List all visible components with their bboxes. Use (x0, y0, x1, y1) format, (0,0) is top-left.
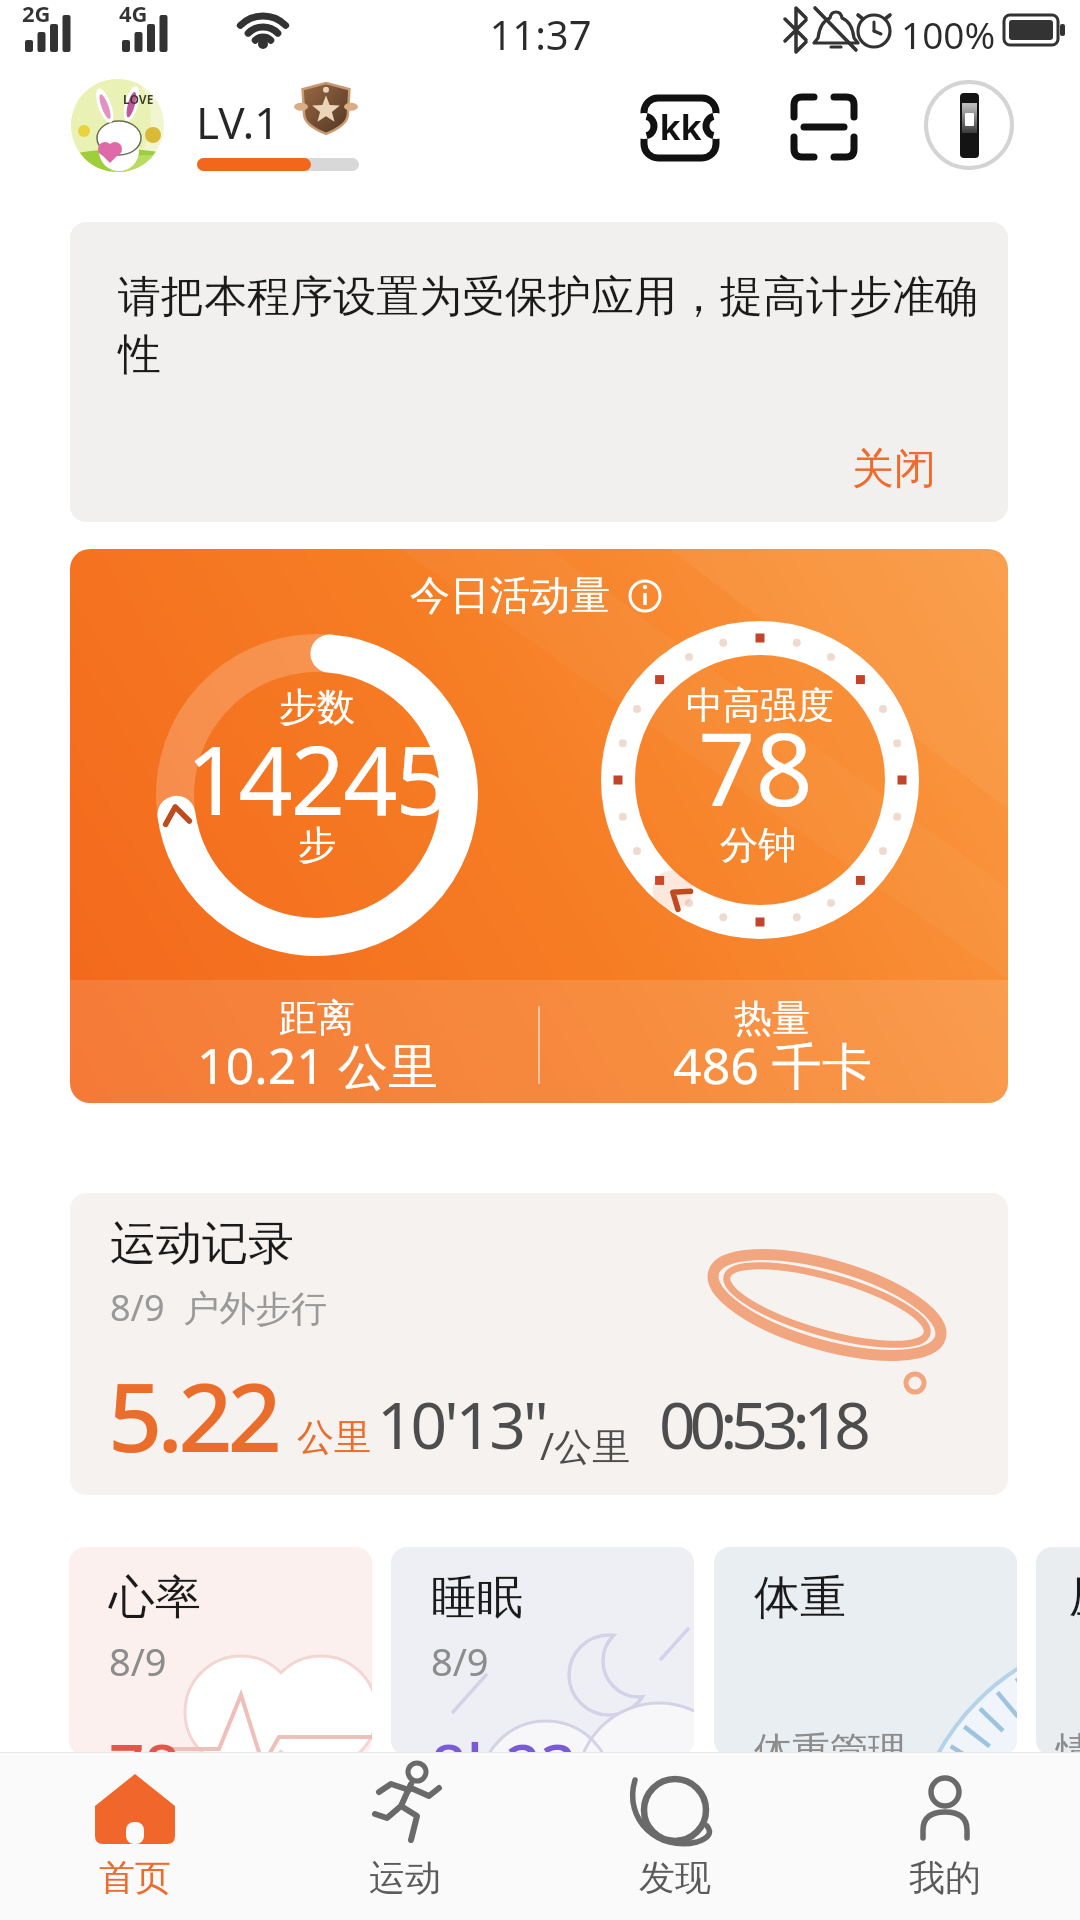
button[interactable] (925, 81, 1013, 169)
staticText: 运动记录 (110, 1215, 294, 1273)
staticText: 请把本程序设置为受保护应用，提高计步准确 性 (118, 270, 978, 381)
button[interactable]: 今日活动量 (70, 549, 1008, 1103)
staticText: 心率 (109, 1569, 201, 1627)
staticText: LV.1 (196, 92, 280, 152)
staticText: 中高强度 (686, 682, 834, 729)
staticText: 关闭 (852, 443, 936, 496)
staticText: 8h23 (431, 1723, 577, 1756)
staticText: 公里 (297, 1414, 371, 1461)
staticText: 今日活动量 (410, 570, 610, 620)
staticText: 14245 (186, 713, 448, 842)
button[interactable]: 运动 (270, 1752, 540, 1920)
staticText: 热量 (734, 994, 810, 1042)
button[interactable] (790, 93, 858, 161)
staticText: 首页 (99, 1855, 171, 1900)
staticText: 运动 (369, 1855, 441, 1900)
staticText: 体重 (754, 1569, 846, 1627)
staticText: 10.21 公里 (197, 1031, 438, 1099)
staticText: 486 千卡 (673, 1031, 872, 1099)
button[interactable]: 关闭 (852, 443, 936, 496)
staticText: 11:37 (489, 7, 592, 61)
staticText: 体重管理 (754, 1727, 906, 1756)
button[interactable]: 心率 (69, 1547, 372, 1756)
button[interactable]: 请把本程序设置为受保护应用，提高计步准确 性 (70, 222, 1008, 522)
staticText: 10'13" (377, 1381, 546, 1468)
staticText: 情绪管理 (1056, 1727, 1080, 1756)
button[interactable]: 睡眠 (391, 1547, 694, 1756)
staticText: 睡眠 (431, 1569, 523, 1627)
staticText: LOVE (123, 91, 154, 107)
staticText: 100% (901, 9, 996, 59)
button[interactable]: 首页 (0, 1752, 270, 1920)
staticText: /公里 (540, 1419, 631, 1471)
button[interactable]: kk (640, 94, 720, 162)
button[interactable]: 体重 (714, 1547, 1017, 1756)
staticText: 78 (698, 699, 813, 835)
staticText: 压力 (1069, 1569, 1080, 1627)
staticText: 我的 (909, 1855, 981, 1900)
staticText: 8/9 (109, 1635, 167, 1687)
staticText: 2G (22, 0, 51, 28)
staticText: 分钟 (720, 821, 796, 869)
button[interactable]: 压力 (1036, 1547, 1080, 1756)
staticText: 发现 (639, 1855, 711, 1900)
staticText: 距离 (279, 994, 355, 1042)
staticText: 78 (109, 1723, 180, 1756)
staticText: 00:53:18 (659, 1381, 865, 1468)
staticText: 5.22 (108, 1350, 277, 1479)
button[interactable]: 运动记录 (70, 1193, 1008, 1495)
staticText: 8/9 (431, 1635, 489, 1687)
button[interactable]: 我的 (810, 1752, 1080, 1920)
button[interactable]: LOVE (71, 79, 164, 172)
staticText: 8/9 户外步行 (110, 1283, 328, 1332)
staticText: kk (659, 104, 702, 150)
staticText: 4G (119, 0, 148, 28)
staticText: 步 (298, 821, 336, 869)
staticText: 步数 (279, 683, 355, 731)
button[interactable]: 发现 (540, 1752, 810, 1920)
